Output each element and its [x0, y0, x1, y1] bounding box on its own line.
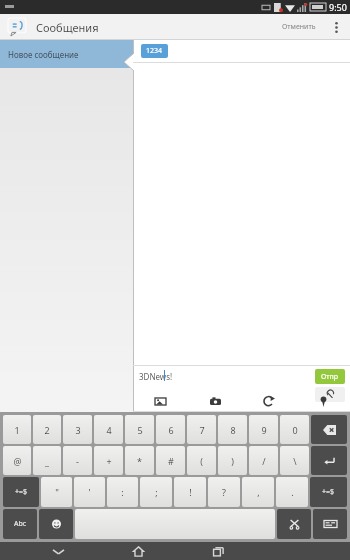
button[interactable]: ;	[140, 477, 172, 507]
button[interactable]	[8, 18, 26, 36]
staticText: )	[231, 455, 234, 467]
button[interactable]: Enter	[311, 446, 347, 475]
staticText: ;	[155, 486, 158, 498]
staticText: +=$	[322, 487, 335, 497]
staticText: 7	[199, 424, 205, 436]
staticText: !	[189, 486, 192, 498]
button[interactable]: Keyboard settings	[313, 509, 347, 539]
staticText: /	[262, 455, 266, 467]
button[interactable]: More options	[328, 19, 344, 35]
staticText: Отпр	[321, 372, 339, 382]
button[interactable]: .	[276, 477, 308, 507]
staticText: Сообщения	[36, 20, 99, 35]
button[interactable]: Camera	[188, 391, 242, 411]
staticText: +	[106, 455, 112, 467]
button[interactable]: Новое сообщение	[0, 40, 133, 68]
button[interactable]: 4	[94, 415, 123, 444]
staticText: .	[291, 486, 294, 498]
button[interactable]: *	[125, 446, 154, 475]
button[interactable]: Home	[127, 542, 149, 560]
button[interactable]: Share	[242, 391, 296, 411]
button[interactable]: ,	[242, 477, 274, 507]
button[interactable]: +	[94, 446, 123, 475]
button[interactable]: ?	[208, 477, 240, 507]
staticText: 3DNews!	[139, 371, 173, 382]
staticText: -	[76, 455, 79, 467]
button[interactable]: (	[187, 446, 216, 475]
button[interactable]: )	[218, 446, 247, 475]
staticText: 6	[168, 424, 174, 436]
staticText: 8	[230, 424, 236, 436]
staticText: '	[88, 486, 91, 498]
staticText: ,	[257, 486, 260, 498]
staticText: Новое сообщение	[8, 49, 79, 60]
button[interactable]: _	[33, 446, 61, 475]
button[interactable]: Отменить	[278, 18, 320, 36]
button[interactable]: 9	[249, 415, 278, 444]
button[interactable]: Abc	[3, 509, 37, 539]
staticText: :	[121, 486, 124, 498]
staticText: _	[45, 455, 49, 467]
button[interactable]: Location	[296, 391, 350, 411]
staticText: +=$	[15, 487, 28, 497]
button[interactable]: #	[156, 446, 185, 475]
button[interactable]: Backspace	[311, 415, 347, 444]
staticText: "	[55, 486, 59, 498]
button[interactable]	[75, 509, 275, 539]
button[interactable]: 3	[63, 415, 92, 444]
staticText: 1	[14, 424, 20, 436]
button[interactable]: 8	[218, 415, 247, 444]
button[interactable]: 6	[156, 415, 185, 444]
button[interactable]: Отпр	[315, 369, 345, 384]
staticText: Отменить	[282, 22, 316, 32]
staticText: 9	[261, 424, 267, 436]
staticText: 1234	[146, 46, 163, 56]
staticText: 3	[75, 424, 81, 436]
button[interactable]: Insert picture	[133, 391, 188, 411]
button[interactable]: Hide keyboard	[47, 542, 69, 560]
staticText: #	[168, 455, 174, 467]
staticText: 2	[44, 424, 50, 436]
button[interactable]: '	[74, 477, 105, 507]
button[interactable]: 0	[280, 415, 309, 444]
button[interactable]: 5	[125, 415, 154, 444]
staticText: \	[293, 455, 297, 467]
button[interactable]: 7	[187, 415, 216, 444]
button[interactable]: \	[280, 446, 309, 475]
staticText: 5	[137, 424, 143, 436]
button[interactable]: @	[3, 446, 31, 475]
button[interactable]: Tools	[277, 509, 311, 539]
button[interactable]: 1	[3, 415, 31, 444]
button[interactable]: /	[249, 446, 278, 475]
button[interactable]: Attach	[315, 387, 345, 402]
staticText: (	[200, 455, 203, 467]
staticText: 0	[292, 424, 298, 436]
staticText: 4	[106, 424, 112, 436]
button[interactable]: 2	[33, 415, 61, 444]
button[interactable]: !	[174, 477, 206, 507]
button[interactable]: +=$	[3, 477, 39, 507]
button[interactable]: -	[63, 446, 92, 475]
button[interactable]: +=$	[310, 477, 347, 507]
staticText: ?	[222, 486, 226, 498]
staticText: *	[137, 455, 142, 467]
staticText: 9:50	[329, 1, 347, 13]
button[interactable]: "	[41, 477, 72, 507]
staticText: Abc	[14, 519, 27, 529]
button[interactable]: Recent apps	[207, 542, 229, 560]
button[interactable]: :	[107, 477, 138, 507]
button[interactable]: 1234	[141, 44, 168, 58]
button[interactable]: Emoji	[39, 509, 73, 539]
staticText: @	[13, 455, 22, 467]
